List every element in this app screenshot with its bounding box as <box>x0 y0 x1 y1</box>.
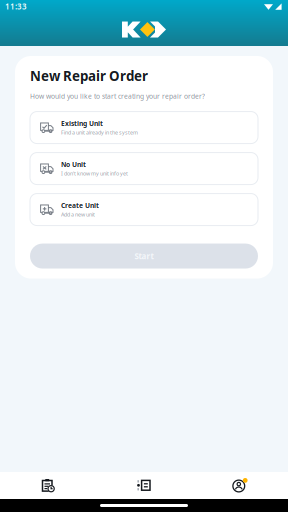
staticText: Start <box>134 251 153 261</box>
button[interactable]: Repair Orders <box>0 472 96 499</box>
button[interactable]: Start <box>30 244 258 269</box>
staticText: Existing Unit <box>61 119 103 128</box>
staticText: No Unit <box>61 160 86 169</box>
staticText: Create Unit <box>61 201 99 210</box>
button[interactable]: Create Unit <box>30 194 258 226</box>
staticText: New Repair Order <box>30 67 148 85</box>
staticText: I don't know my unit info yet <box>61 170 128 177</box>
staticText: Find a unit already in the system <box>61 129 138 136</box>
staticText: How would you like to start creating you… <box>30 92 205 101</box>
button[interactable]: Existing Unit <box>30 112 258 144</box>
staticText: 11:33 <box>5 1 27 12</box>
button[interactable]: Service Requests <box>96 472 192 499</box>
staticText: Add a new unit <box>61 211 95 218</box>
button[interactable]: Account <box>192 472 288 499</box>
button[interactable]: No Unit <box>30 153 258 185</box>
